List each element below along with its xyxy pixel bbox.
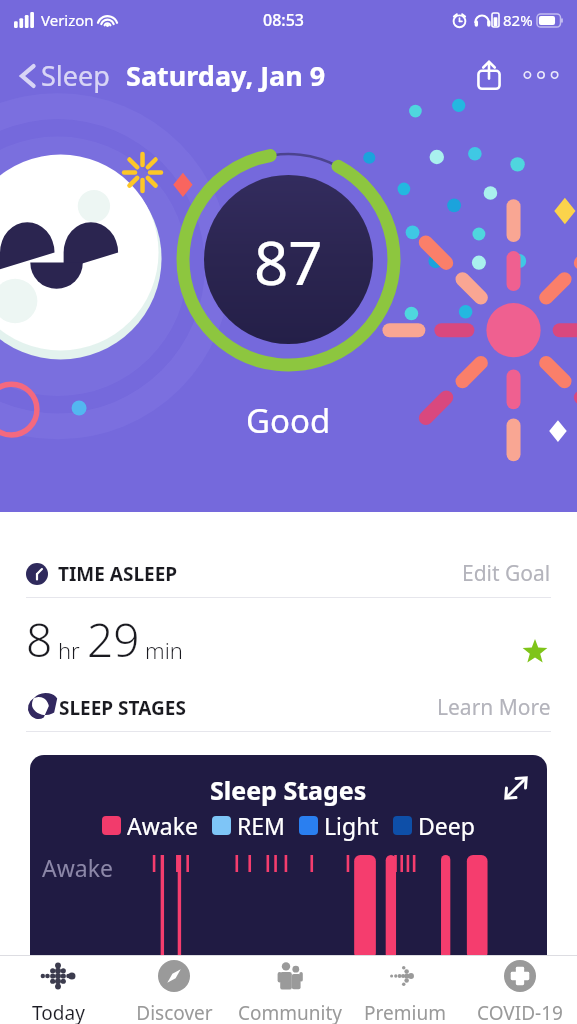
button[interactable]: TIME ASLEEP xyxy=(26,559,551,588)
staticText: Edit Goal xyxy=(462,559,551,588)
staticText: REM xyxy=(237,810,285,841)
button[interactable]: COVID-19 xyxy=(462,956,577,1024)
staticText: Community xyxy=(238,1000,342,1024)
button[interactable]: Good xyxy=(246,398,331,443)
staticText: Light xyxy=(324,810,379,841)
staticText: 87 xyxy=(254,221,323,303)
button[interactable]: Share xyxy=(467,53,511,97)
button[interactable]: Sleep score 87 Good xyxy=(176,147,401,372)
staticText: 8 xyxy=(26,608,53,671)
staticText: 08:53 xyxy=(263,9,304,31)
button[interactable]: Discover xyxy=(116,956,232,1024)
staticText: Sleep xyxy=(41,57,110,94)
button[interactable]: Today xyxy=(0,956,116,1024)
button[interactable]: SLEEP STAGES xyxy=(26,693,551,722)
button[interactable]: Back to Sleep xyxy=(14,51,114,100)
staticText: Today xyxy=(32,1000,85,1024)
staticText: Learn More xyxy=(437,693,551,722)
staticText: SLEEP STAGES xyxy=(59,695,186,721)
staticText: Awake xyxy=(127,810,198,841)
staticText: hr xyxy=(58,635,80,665)
staticText: min xyxy=(145,635,183,665)
button[interactable]: Sleep Stages xyxy=(30,755,547,955)
staticText: Discover xyxy=(136,1000,213,1024)
staticText: Deep xyxy=(418,810,475,841)
staticText: Sleep Stages xyxy=(210,773,367,807)
staticText: Verizon xyxy=(41,10,94,30)
staticText: 29 xyxy=(87,608,140,671)
staticText: COVID-19 xyxy=(477,1000,563,1024)
staticText: Saturday, Jan 9 xyxy=(126,57,326,94)
staticText: 82% xyxy=(503,10,533,30)
button[interactable]: Community xyxy=(232,956,347,1024)
staticText: TIME ASLEEP xyxy=(58,561,178,587)
button[interactable]: Expand chart xyxy=(499,771,533,805)
staticText: Premium xyxy=(364,1000,446,1024)
staticText: Awake xyxy=(42,852,113,883)
button[interactable]: Premium xyxy=(347,956,462,1024)
button[interactable]: More options xyxy=(519,53,563,97)
